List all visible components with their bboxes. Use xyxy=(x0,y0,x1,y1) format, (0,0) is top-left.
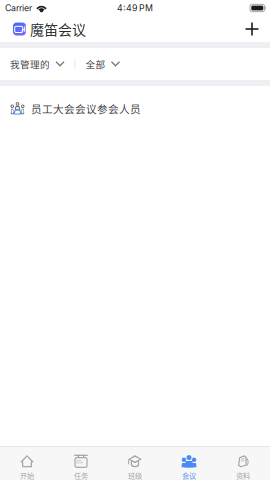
staticText: 任务 xyxy=(74,470,88,480)
staticText: 魔笛会议 xyxy=(30,19,86,39)
button[interactable]: 我管理的 xyxy=(0,48,74,80)
button[interactable]: 班级 xyxy=(108,447,162,480)
button[interactable]: 员工大会会议参会人员 xyxy=(0,94,270,123)
staticText: 4:49 PM xyxy=(117,3,153,13)
button[interactable]: New meeting xyxy=(241,18,263,40)
staticText: 资料 xyxy=(236,470,250,480)
button[interactable]: 会议 xyxy=(162,447,216,480)
staticText: 会议 xyxy=(182,470,196,480)
staticText: 我管理的 xyxy=(10,57,50,71)
button[interactable]: 开始 xyxy=(0,447,54,480)
staticText: 班级 xyxy=(128,470,142,480)
staticText: Carrier xyxy=(5,3,32,13)
button[interactable]: 全部 xyxy=(75,48,130,80)
button[interactable]: 任务 xyxy=(54,447,108,480)
staticText: 开始 xyxy=(20,470,34,480)
staticText: 员工大会会议参会人员 xyxy=(31,101,141,116)
button[interactable]: 资料 xyxy=(216,447,270,480)
staticText: 全部 xyxy=(85,57,105,71)
